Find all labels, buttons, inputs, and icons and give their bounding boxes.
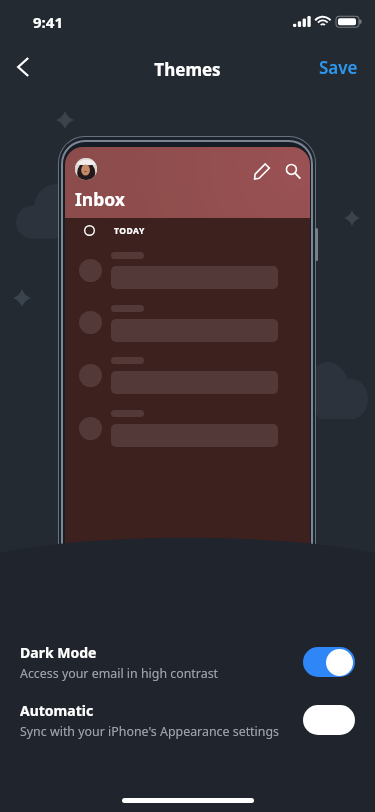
staticText: Themes (0, 58, 375, 81)
staticText: Sync with your iPhone's Appearance setti… (20, 723, 280, 740)
staticText: Access your email in high contrast (20, 665, 219, 682)
staticText: Save (319, 56, 358, 79)
button[interactable]: Automatic (0, 696, 375, 744)
staticText: 9:41 (33, 12, 63, 32)
staticText: Automatic (20, 701, 94, 720)
staticText: Inbox (75, 187, 125, 211)
staticText: Dark Mode (20, 643, 97, 662)
button[interactable]: Compose (247, 156, 276, 185)
button[interactable]: Search (278, 156, 307, 185)
button[interactable] (303, 705, 355, 735)
button[interactable]: Save (311, 51, 366, 84)
staticText: TODAY (114, 225, 145, 237)
button[interactable]: Back (3, 47, 43, 87)
button[interactable]: Dark Mode (0, 638, 375, 686)
button[interactable] (303, 647, 355, 677)
